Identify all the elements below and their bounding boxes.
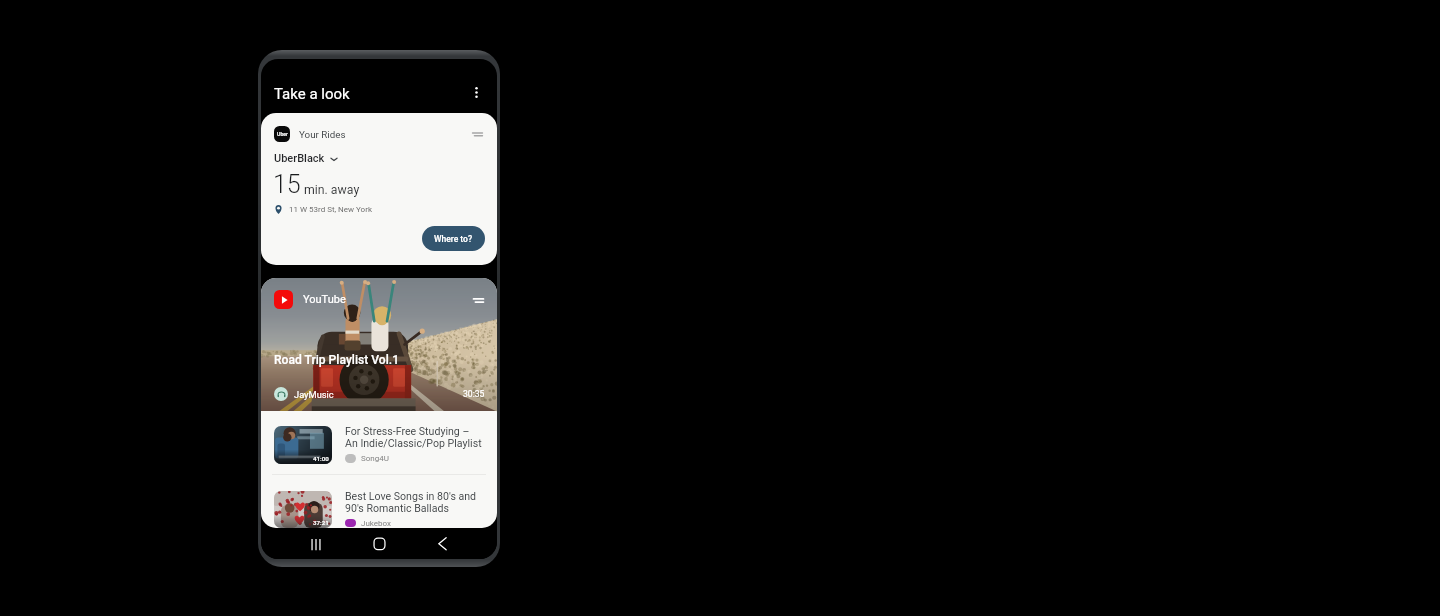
staticText: 15 — [273, 170, 301, 199]
button[interactable]: Back — [411, 528, 474, 559]
staticText: Uber — [277, 131, 288, 137]
button[interactable]: 41:00 — [261, 426, 497, 464]
button[interactable]: Home — [348, 528, 411, 559]
button[interactable]: Uber — [261, 113, 497, 265]
staticText: Best Love Songs in 80's and 90's Romanti… — [345, 490, 477, 515]
staticText: For Stress-Free Studying – An Indie/Clas… — [345, 425, 482, 450]
staticText: 41:00 — [313, 455, 329, 462]
staticText: YouTube — [303, 293, 346, 306]
staticText: 30:35 — [463, 389, 485, 399]
staticText: Road Trip Playlist Vol.1 — [274, 353, 400, 367]
staticText: Your Rides — [299, 129, 346, 140]
staticText: Jukebox — [361, 519, 391, 527]
staticText: Where to? — [434, 234, 473, 244]
staticText: min. away — [304, 183, 360, 197]
staticText: Take a look — [274, 85, 350, 103]
staticText: JayMusic — [294, 389, 334, 400]
button[interactable]: Card options — [469, 126, 485, 142]
button[interactable]: Recents — [284, 528, 348, 559]
staticText: 11 W 53rd St, New York — [289, 205, 372, 214]
button[interactable]: More options — [466, 82, 486, 102]
button[interactable]: Card options — [470, 292, 486, 308]
button[interactable]: 37:21 — [261, 491, 497, 528]
staticText: Song4U — [361, 454, 389, 463]
button[interactable]: Where to? — [422, 226, 485, 251]
staticText: UberBlack — [274, 152, 325, 165]
staticText: 37:21 — [313, 519, 329, 526]
